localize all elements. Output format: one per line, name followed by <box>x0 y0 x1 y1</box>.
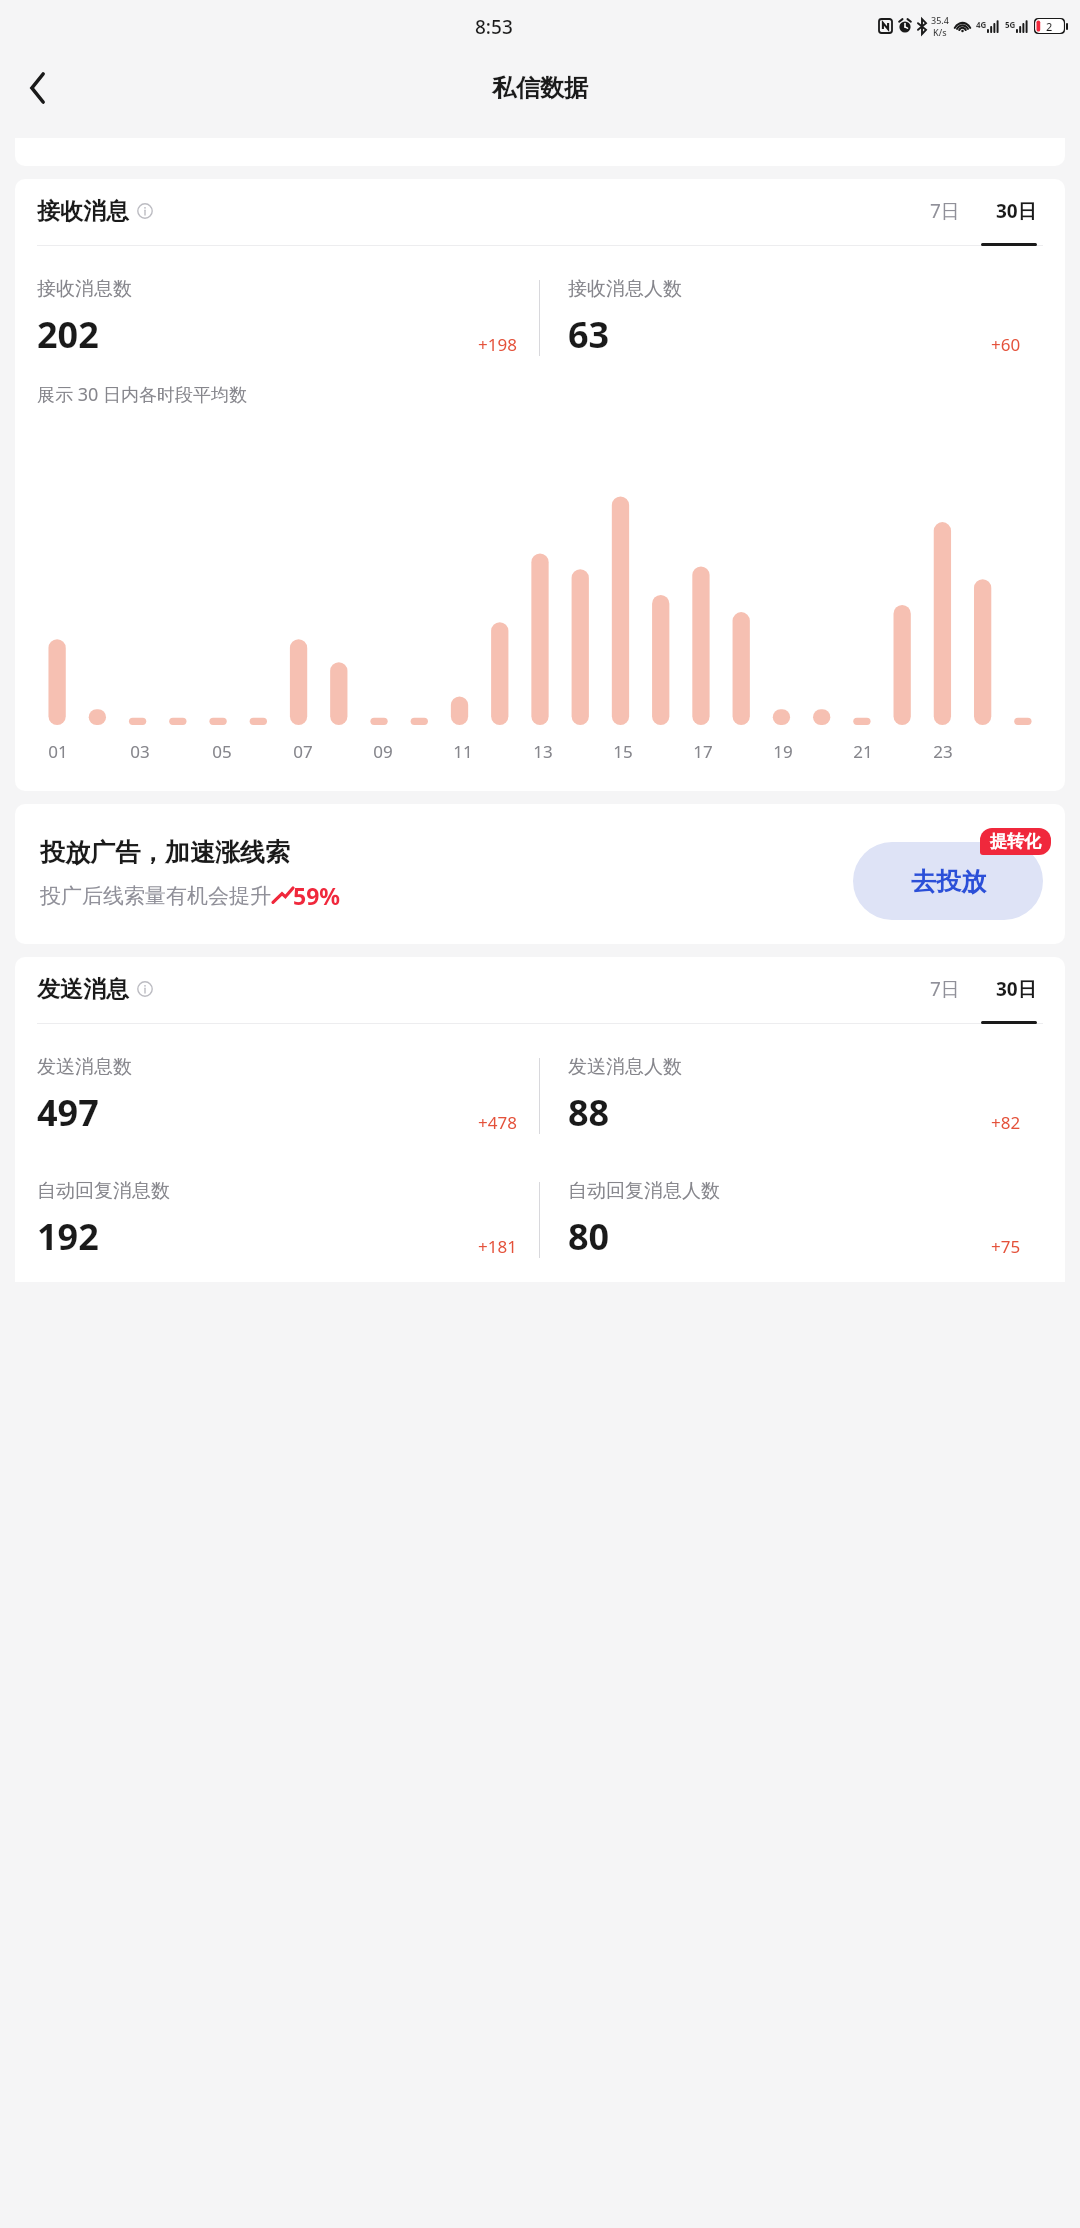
staticText: K/s <box>933 26 947 38</box>
staticText: 5G <box>1005 19 1016 30</box>
staticText: 19 <box>773 740 793 763</box>
staticText: 01 <box>48 740 68 763</box>
staticText: +478 <box>478 1111 517 1134</box>
staticText: 投广后线索量有机会提升 <box>40 883 271 909</box>
staticText: 80 <box>568 1212 610 1261</box>
button[interactable]: 30日 <box>990 198 1043 224</box>
staticText: 21 <box>853 740 873 763</box>
staticText: 15 <box>613 740 633 763</box>
staticText: 59% <box>293 880 341 911</box>
staticText: 202 <box>37 310 99 359</box>
button[interactable]: 30日 <box>990 976 1043 1002</box>
staticText: 05 <box>212 740 232 763</box>
staticText: 88 <box>568 1088 610 1137</box>
staticText: 30日 <box>996 976 1037 1002</box>
staticText: 8:53 <box>475 14 513 40</box>
button[interactable]: 7日 <box>924 190 966 232</box>
staticText: 自动回复消息人数 <box>568 1179 720 1203</box>
staticText: 提转化 <box>990 831 1041 852</box>
button[interactable]: Back <box>14 64 62 112</box>
staticText: +75 <box>991 1235 1021 1258</box>
staticText: 11 <box>453 740 473 763</box>
staticText: 发送消息 <box>37 975 129 1004</box>
staticText: 私信数据 <box>492 73 588 103</box>
staticText: 7日 <box>930 198 960 224</box>
staticText: 2 <box>1046 19 1053 34</box>
staticText: +82 <box>991 1111 1021 1134</box>
staticText: 去投放 <box>911 866 986 897</box>
staticText: 自动回复消息数 <box>37 1179 170 1203</box>
staticText: 30日 <box>996 198 1037 224</box>
staticText: +198 <box>478 333 517 356</box>
staticText: 接收消息 <box>37 197 129 226</box>
staticText: 接收消息人数 <box>568 277 682 301</box>
staticText: 投放广告，加速涨线索 <box>40 837 290 868</box>
staticText: 09 <box>373 740 393 763</box>
staticText: 63 <box>568 310 610 359</box>
staticText: 192 <box>37 1212 99 1261</box>
staticText: 发送消息人数 <box>568 1055 682 1079</box>
staticText: 发送消息数 <box>37 1055 132 1079</box>
staticText: 03 <box>130 740 150 763</box>
staticText: 7日 <box>930 976 960 1002</box>
button[interactable]: 7日 <box>924 968 966 1010</box>
staticText: 497 <box>37 1088 99 1137</box>
other: Info <box>137 203 153 219</box>
staticText: 23 <box>933 740 953 763</box>
staticText: +60 <box>991 333 1021 356</box>
staticText: 4G <box>976 19 987 30</box>
button[interactable]: 去投放 <box>853 842 1043 920</box>
staticText: 17 <box>693 740 713 763</box>
other: Info <box>137 981 153 997</box>
staticText: 展示 30 日内各时段平均数 <box>37 382 247 407</box>
button[interactable]: 投放广告，加速涨线索 <box>15 804 1065 944</box>
staticText: +181 <box>478 1235 517 1258</box>
staticText: 35.4 <box>931 14 949 26</box>
staticText: 07 <box>293 740 313 763</box>
staticText: 接收消息数 <box>37 277 132 301</box>
staticText: 13 <box>533 740 553 763</box>
